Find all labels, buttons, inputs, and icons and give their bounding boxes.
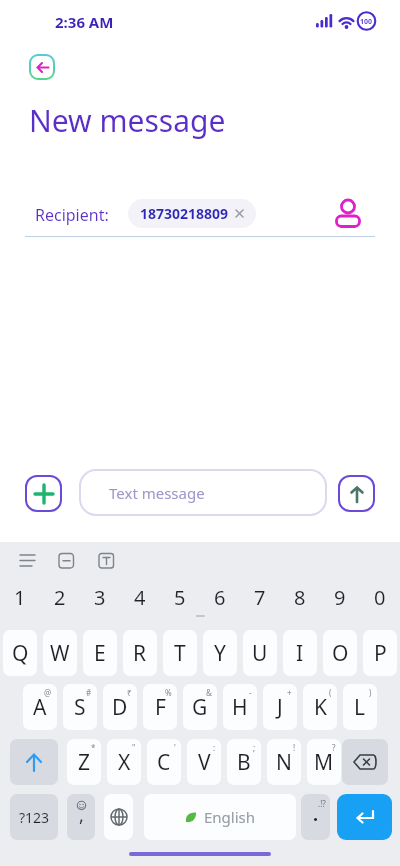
staticText: 3 <box>94 584 106 611</box>
button[interactable]: N <box>267 739 301 785</box>
button[interactable]: 0 <box>360 578 400 616</box>
button[interactable]: 2 <box>40 578 80 616</box>
button[interactable]: ?123 <box>10 794 58 840</box>
staticText: W <box>50 639 70 668</box>
staticText: G <box>192 693 208 722</box>
staticText: @ <box>44 687 52 698</box>
staticText: V <box>198 748 211 777</box>
button[interactable]: D <box>103 684 137 730</box>
button[interactable]: 9 <box>320 578 360 616</box>
button[interactable] <box>337 794 392 840</box>
staticText: * <box>91 742 96 753</box>
button[interactable] <box>10 739 58 785</box>
button[interactable]: V <box>187 739 221 785</box>
staticText: 100 <box>360 17 373 27</box>
staticText: .!? <box>318 798 326 809</box>
staticText: B <box>237 748 251 777</box>
staticText: 2 <box>54 584 66 611</box>
button[interactable]: T <box>163 630 197 676</box>
button[interactable]: W <box>43 630 77 676</box>
button[interactable]: S <box>63 684 97 730</box>
button[interactable]: M <box>307 739 341 785</box>
button[interactable]: 6 <box>200 578 240 616</box>
staticText: I <box>296 639 304 668</box>
button[interactable]: X <box>107 739 141 785</box>
staticText: X <box>118 748 131 777</box>
staticText: + <box>287 687 292 698</box>
staticText: N <box>276 748 292 777</box>
button[interactable]: Q <box>3 630 37 676</box>
button[interactable] <box>29 54 55 80</box>
button[interactable]: 5 <box>160 578 200 616</box>
button[interactable]: 3 <box>80 578 120 616</box>
staticText: - <box>249 687 252 698</box>
staticText: S <box>74 693 86 722</box>
staticText: ) <box>369 687 372 698</box>
button[interactable]: , <box>67 794 95 840</box>
staticText: 9 <box>334 584 346 611</box>
staticText: 2:36 AM <box>55 12 114 32</box>
staticText: English <box>204 807 256 827</box>
button[interactable] <box>338 475 375 512</box>
staticText: M <box>314 748 334 777</box>
staticText: 0 <box>374 584 386 611</box>
staticText: ; <box>253 742 256 753</box>
staticText: ! <box>293 742 296 753</box>
button[interactable]: English <box>144 794 296 840</box>
button[interactable]: Z <box>67 739 101 785</box>
button[interactable]: C <box>147 739 181 785</box>
button[interactable] <box>19 553 119 569</box>
button[interactable]: B <box>227 739 261 785</box>
staticText: ?123 <box>19 808 50 827</box>
button[interactable]: Text message <box>79 469 327 516</box>
staticText: U <box>252 639 268 668</box>
button[interactable]: E <box>83 630 117 676</box>
button[interactable]: Y <box>203 630 237 676</box>
staticText: J <box>277 693 283 722</box>
staticText: L <box>354 693 366 722</box>
staticText: H <box>232 693 248 722</box>
staticText: 1 <box>14 584 26 611</box>
button[interactable] <box>342 739 388 785</box>
button[interactable]: A <box>23 684 57 730</box>
button[interactable] <box>104 794 133 840</box>
staticText: T <box>174 639 186 668</box>
button[interactable]: J <box>263 684 297 730</box>
button[interactable]: 1 <box>0 578 40 616</box>
button[interactable]: U <box>243 630 277 676</box>
button[interactable]: F <box>143 684 177 730</box>
staticText: 6 <box>214 584 226 611</box>
button[interactable] <box>25 475 62 512</box>
staticText: % <box>165 687 172 698</box>
staticText: : <box>213 742 216 753</box>
staticText: Text message <box>109 483 205 503</box>
button[interactable]: G <box>183 684 217 730</box>
button[interactable]: H <box>223 684 257 730</box>
staticText: ? <box>332 742 336 753</box>
button[interactable] <box>334 199 362 227</box>
button[interactable]: O <box>323 630 357 676</box>
staticText: P <box>374 639 387 668</box>
button[interactable]: I <box>283 630 317 676</box>
staticText: E <box>94 639 106 668</box>
button[interactable]: 8 <box>280 578 320 616</box>
button[interactable]: L <box>343 684 377 730</box>
button[interactable]: 4 <box>120 578 160 616</box>
staticText: Q <box>12 639 29 668</box>
staticText: 8 <box>294 584 306 611</box>
staticText: C <box>157 748 171 777</box>
button[interactable]: 18730218809 <box>140 199 244 228</box>
button[interactable]: R <box>123 630 157 676</box>
button[interactable]: 7 <box>240 578 280 616</box>
button[interactable]: P <box>363 630 397 676</box>
button[interactable]: . <box>301 794 330 840</box>
staticText: 5 <box>174 584 186 611</box>
staticText: Z <box>78 748 91 777</box>
staticText: Recipient: <box>35 204 109 226</box>
button[interactable]: K <box>303 684 337 730</box>
staticText: ( <box>329 687 332 698</box>
staticText: New message <box>29 100 226 141</box>
staticText: 18730218809 <box>140 204 229 223</box>
staticText: , <box>79 803 84 828</box>
staticText: A <box>33 693 47 722</box>
